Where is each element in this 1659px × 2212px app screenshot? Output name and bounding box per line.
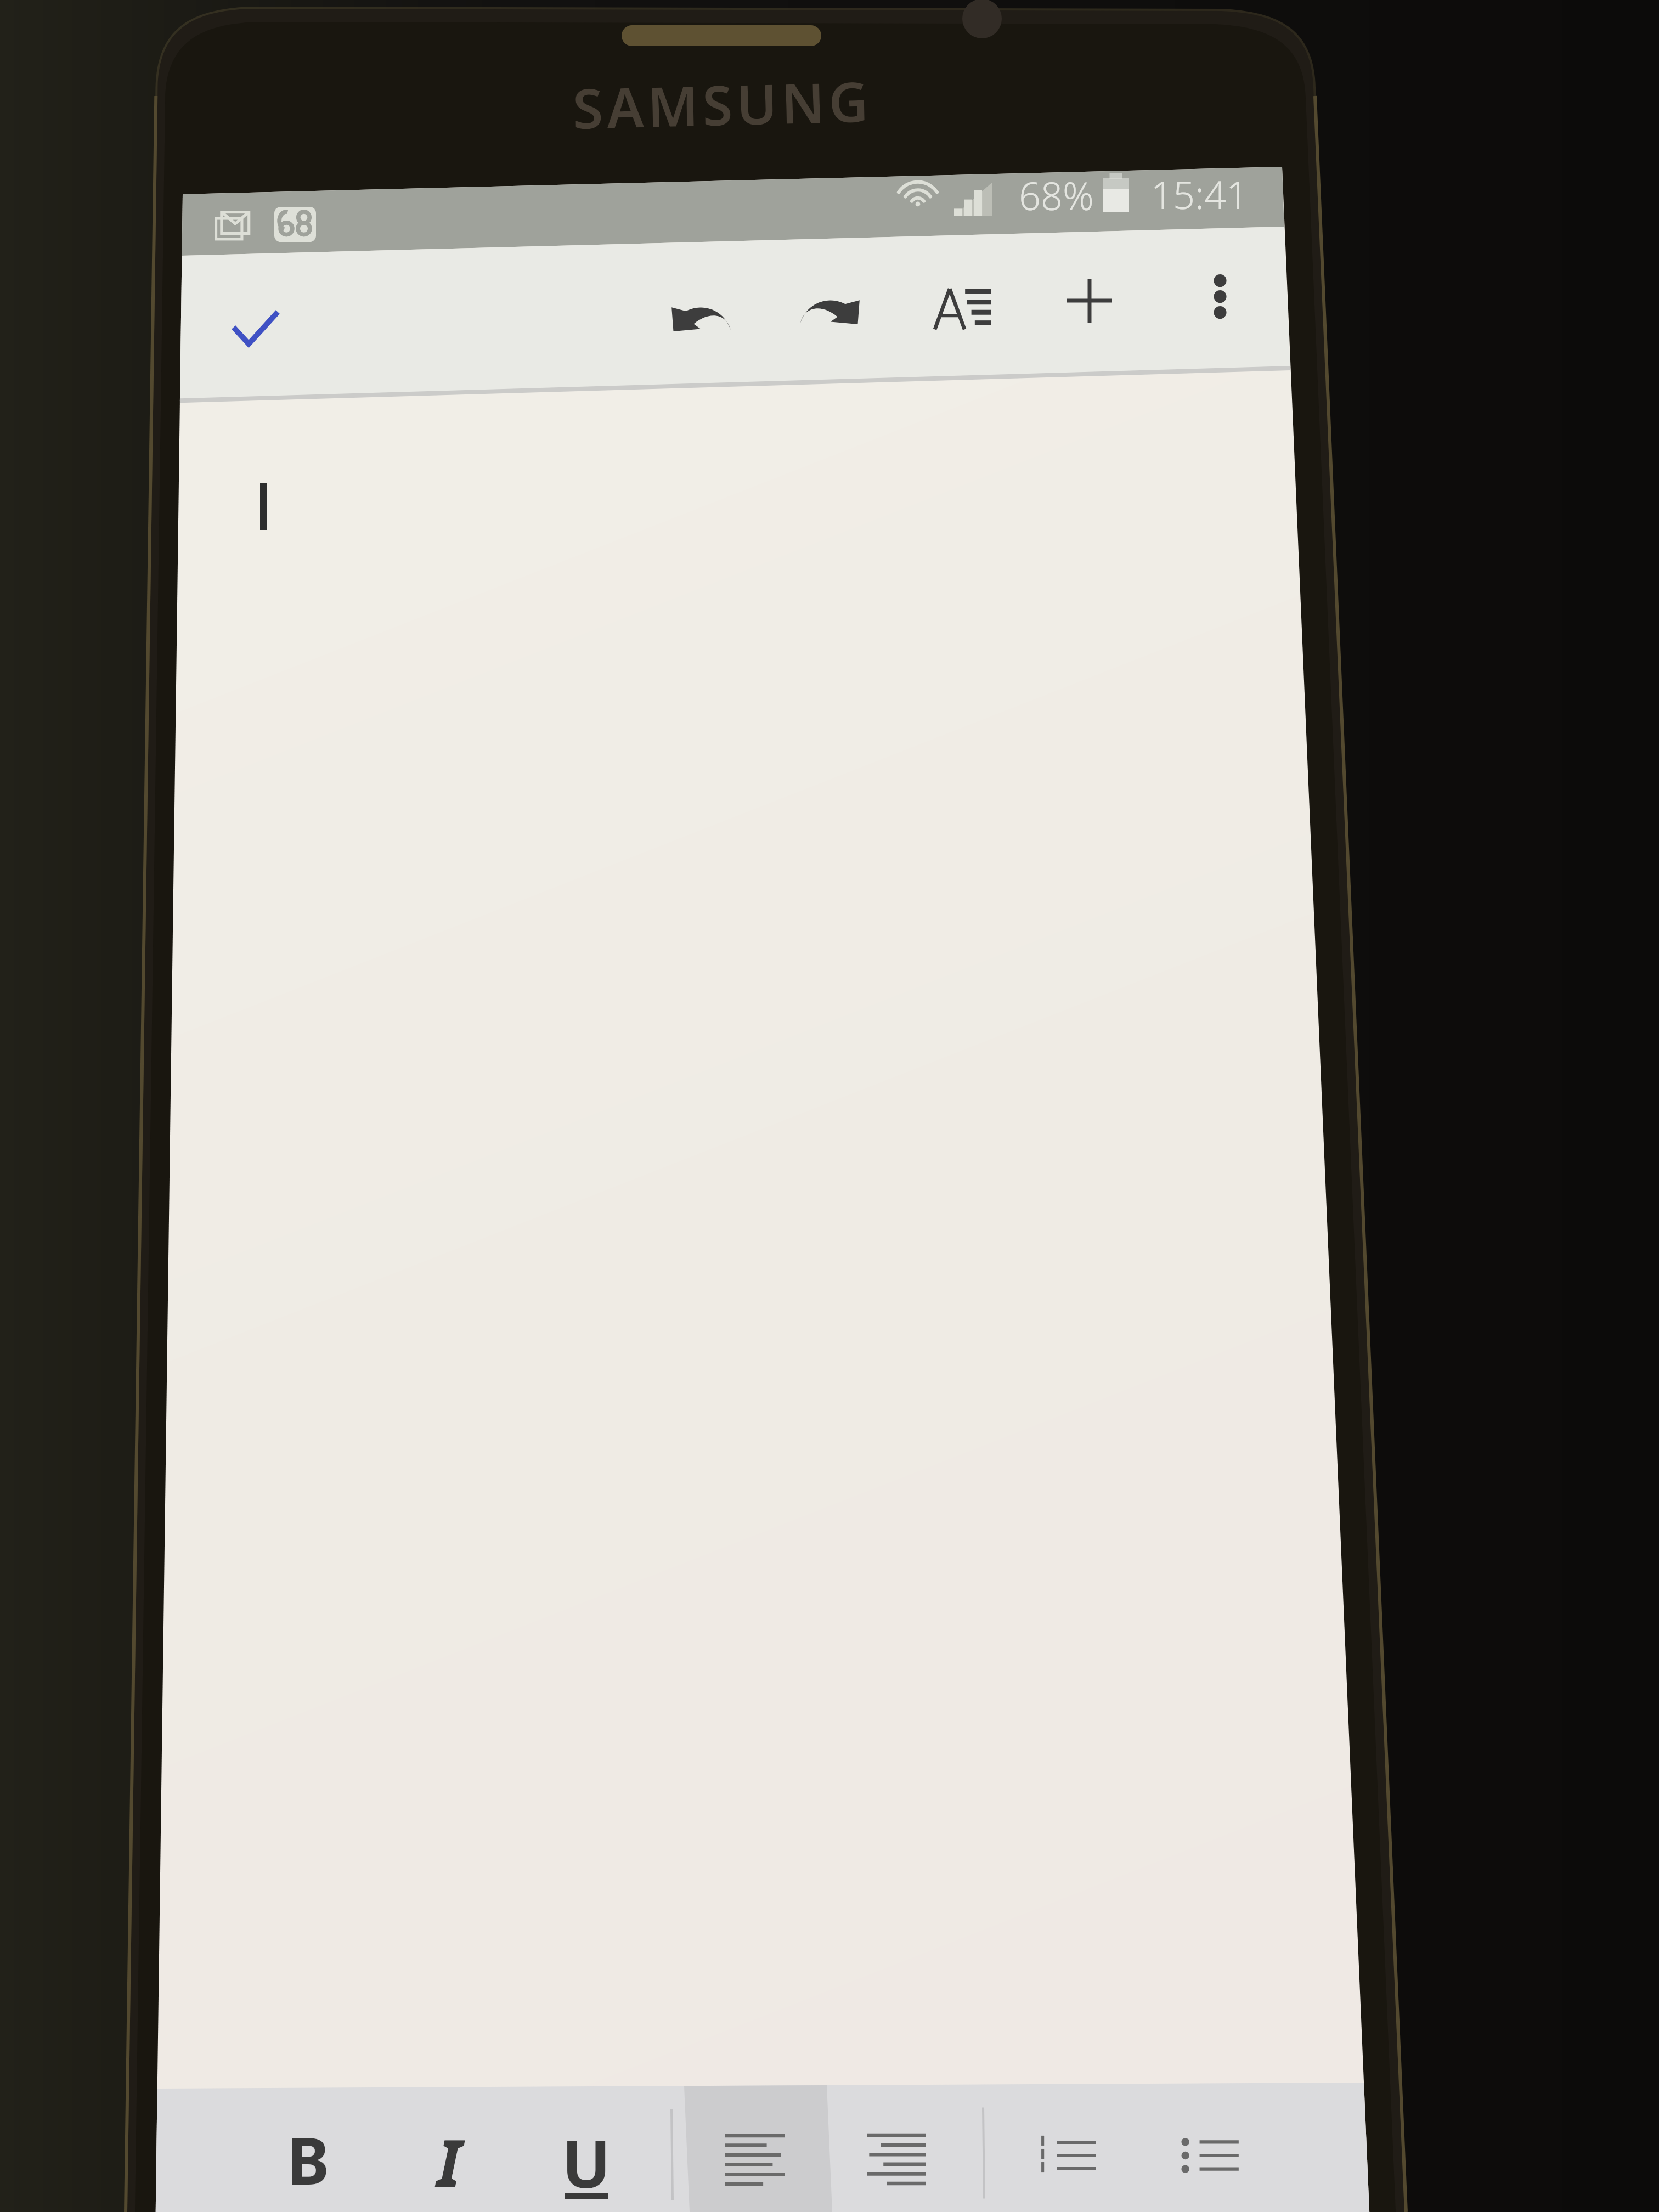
button[interactable]: Numbered list [1015, 2091, 1120, 2212]
button[interactable]: Align right [844, 2095, 949, 2212]
button[interactable]: Underline [534, 2098, 639, 2212]
staticText: B [286, 2115, 330, 2204]
button[interactable]: Document body [176, 406, 1328, 2079]
staticText: I [437, 2118, 462, 2206]
button[interactable]: Insert [1051, 265, 1128, 336]
staticText: SAMSUNG [572, 63, 873, 145]
button[interactable]: Undo [657, 283, 744, 349]
button[interactable]: Done [212, 287, 300, 369]
staticText: 15:41 [1151, 168, 1248, 220]
other: Wi-Fi [901, 181, 934, 205]
button[interactable]: Redo [787, 276, 874, 342]
button[interactable]: Italic [397, 2097, 502, 2212]
button[interactable]: Text formatting [922, 272, 1004, 343]
other: Gmail notification [215, 211, 250, 240]
button[interactable]: More options [1195, 261, 1245, 332]
button[interactable]: Align left [702, 2095, 808, 2212]
other: 68 notifications [274, 207, 316, 242]
staticText: U [562, 2119, 611, 2207]
button[interactable]: Bulleted list [1158, 2091, 1263, 2212]
button[interactable]: Bold [255, 2095, 360, 2212]
other: Battery [1103, 173, 1129, 212]
staticText: 68% [1019, 169, 1094, 221]
other: Mobile signal [954, 182, 992, 216]
